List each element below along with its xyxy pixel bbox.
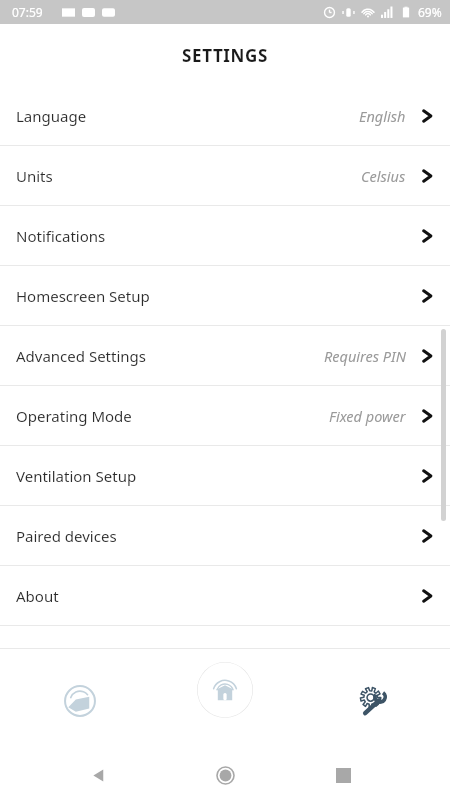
staticText: Operating Mode — [16, 406, 132, 426]
staticText: Fixed power — [329, 406, 406, 426]
staticText: Celsius — [361, 166, 406, 186]
button[interactable]: Homescreen Setup — [0, 266, 450, 325]
staticText: Homescreen Setup — [16, 286, 150, 306]
staticText: SETTINGS — [182, 44, 268, 67]
button[interactable]: Home — [208, 758, 242, 792]
staticText: Requires PIN — [324, 346, 406, 366]
staticText: Units — [16, 166, 53, 186]
button[interactable]: Operating Mode — [0, 386, 450, 445]
button[interactable]: About — [0, 566, 450, 625]
staticText: 69% — [418, 4, 442, 20]
button[interactable]: Back — [82, 758, 116, 792]
staticText: About — [16, 586, 59, 606]
button[interactable]: Settings — [348, 675, 400, 727]
staticText: Ventilation Setup — [16, 466, 137, 486]
button[interactable]: Advanced Settings — [0, 326, 450, 385]
staticText: Advanced Settings — [16, 346, 146, 366]
button[interactable]: Units — [0, 146, 450, 205]
staticText: Notifications — [16, 226, 106, 246]
staticText: Paired devices — [16, 526, 117, 546]
button[interactable]: Language — [0, 86, 450, 145]
button[interactable]: Home — [197, 662, 253, 718]
button[interactable]: Paired devices — [0, 506, 450, 565]
button[interactable]: Recent apps — [326, 758, 360, 792]
button[interactable]: Notifications — [0, 206, 450, 265]
staticText: 07:59 — [12, 4, 43, 20]
staticText: Language — [16, 106, 87, 126]
staticText: English — [359, 106, 406, 126]
button[interactable]: Status — [54, 675, 106, 727]
button[interactable]: Ventilation Setup — [0, 446, 450, 505]
